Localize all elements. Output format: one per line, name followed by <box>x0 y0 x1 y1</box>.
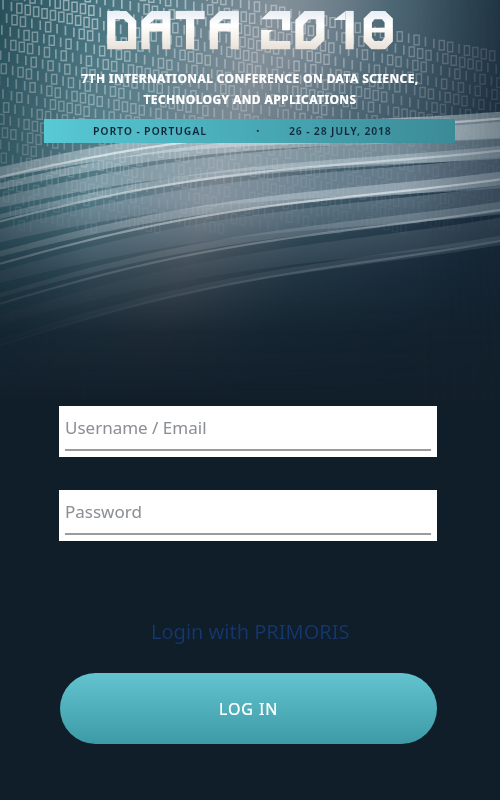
button[interactable]: Username / Email <box>59 406 437 457</box>
staticText: Login with PRIMORIS <box>151 618 350 645</box>
staticText: Password <box>65 500 142 523</box>
staticText: 7TH INTERNATIONAL CONFERENCE ON DATA SCI… <box>81 70 419 86</box>
staticText: LOG IN <box>219 698 279 720</box>
staticText: PORTO - PORTUGAL <box>93 124 207 138</box>
button[interactable]: LOG IN <box>60 673 437 744</box>
staticText: Username / Email <box>65 416 207 439</box>
button[interactable]: Login with PRIMORIS <box>0 610 500 652</box>
button[interactable]: Password <box>59 490 437 541</box>
staticText: 26 - 28 JULY, 2018 <box>289 124 392 138</box>
staticText: TECHNOLOGY AND APPLICATIONS <box>143 91 357 107</box>
staticText: · <box>256 121 260 139</box>
